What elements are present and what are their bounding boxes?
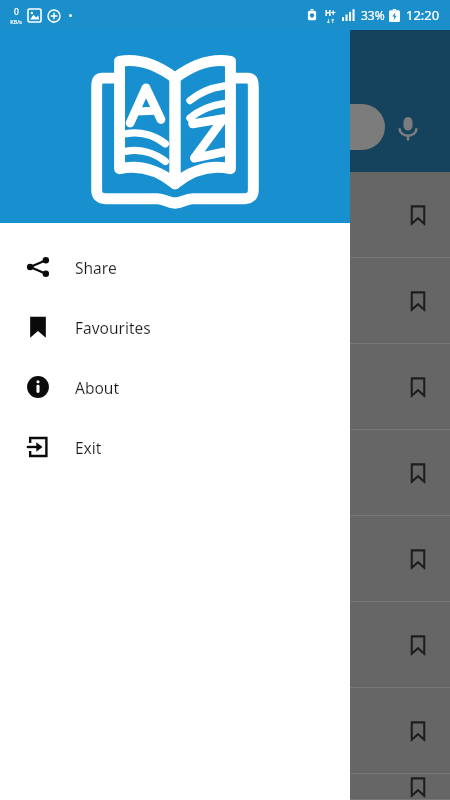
staticText: KB/s — [10, 18, 22, 25]
button[interactable] — [0, 172, 450, 258]
button[interactable] — [16, 104, 385, 150]
button[interactable]: Voice search — [392, 112, 424, 144]
button[interactable] — [0, 516, 450, 602]
button[interactable] — [0, 344, 450, 430]
button[interactable] — [0, 258, 450, 344]
button[interactable] — [0, 688, 450, 774]
staticText: Share — [75, 257, 117, 278]
staticText: 0 — [14, 6, 19, 18]
button[interactable]: Favourites — [0, 297, 350, 357]
button[interactable] — [0, 602, 450, 688]
staticText: Exit — [75, 437, 102, 458]
button[interactable] — [0, 774, 450, 800]
staticText: 12:20 — [406, 6, 440, 24]
button[interactable]: About — [0, 357, 350, 417]
staticText: About — [75, 377, 119, 398]
button[interactable]: Share — [0, 237, 350, 297]
button[interactable]: Exit — [0, 417, 350, 477]
staticText: H+ — [325, 7, 336, 18]
staticText: Favourites — [75, 317, 151, 338]
staticText: ↓↑ — [326, 18, 336, 24]
button[interactable] — [0, 430, 450, 516]
staticText: 33% — [361, 7, 385, 23]
